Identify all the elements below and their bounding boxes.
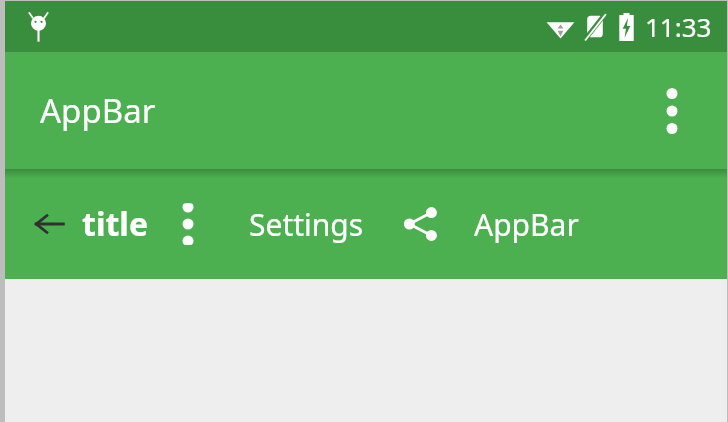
button[interactable]: Settings bbox=[247, 198, 366, 251]
staticText: 11:33 bbox=[645, 9, 712, 44]
button[interactable]: More options bbox=[648, 87, 696, 135]
button[interactable]: Share bbox=[396, 200, 444, 248]
staticText: title bbox=[82, 202, 148, 246]
staticText: Settings bbox=[249, 204, 364, 245]
button[interactable]: AppBar bbox=[472, 198, 581, 251]
button[interactable]: title bbox=[80, 196, 150, 252]
button[interactable]: Navigate up bbox=[27, 202, 71, 246]
staticText: AppBar bbox=[474, 204, 579, 245]
staticText: AppBar bbox=[40, 88, 156, 133]
button[interactable]: More options bbox=[167, 203, 209, 245]
